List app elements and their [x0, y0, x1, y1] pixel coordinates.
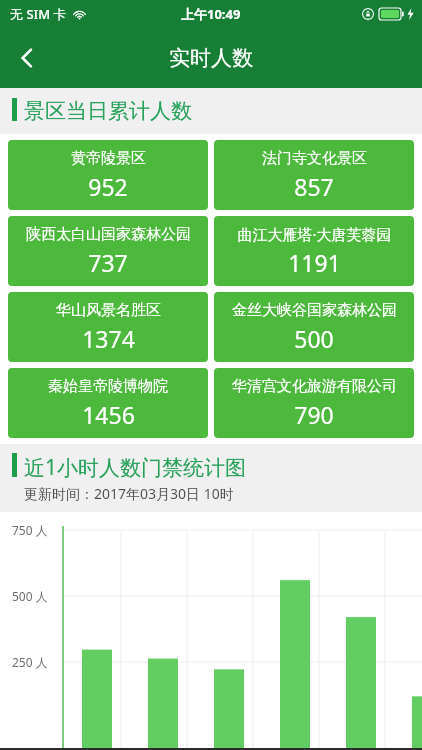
button[interactable]: 法门寺文化景区 [214, 140, 414, 210]
staticText: 华山风景名胜区 [56, 301, 161, 320]
staticText: 陕西太白山国家森林公园 [26, 225, 191, 244]
button[interactable]: 秦始皇帝陵博物院 [8, 368, 208, 438]
staticText: 更新时间：2017年03月30日 10时 [24, 484, 234, 503]
staticText: 750 人 [12, 522, 48, 538]
staticText: 法门寺文化景区 [262, 149, 367, 168]
staticText: 金丝大峡谷国家森林公园 [232, 301, 397, 320]
staticText: 景区当日累计人数 [24, 98, 192, 124]
staticText: 曲江大雁塔·大唐芙蓉园 [237, 224, 392, 244]
staticText: 250 人 [12, 654, 48, 670]
staticText: 952 [88, 171, 128, 202]
staticText: 秦始皇帝陵博物院 [48, 377, 168, 396]
staticText: 790 [294, 399, 334, 430]
button[interactable]: 曲江大雁塔·大唐芙蓉园 [214, 216, 414, 286]
staticText: 857 [294, 171, 334, 202]
staticText: 近1小时人数门禁统计图 [24, 453, 247, 482]
staticText: 737 [88, 247, 128, 278]
staticText: 上午10:49 [181, 5, 241, 23]
staticText: 1374 [82, 323, 135, 354]
staticText: 1456 [82, 399, 135, 430]
button[interactable]: 陕西太白山国家森林公园 [8, 216, 208, 286]
staticText: 无 SIM 卡 [10, 5, 67, 23]
staticText: 黄帝陵景区 [71, 149, 146, 168]
button[interactable]: 返回 [0, 28, 54, 88]
staticText: 500 [294, 323, 334, 354]
button[interactable]: 华山风景名胜区 [8, 292, 208, 362]
staticText: 1191 [288, 247, 341, 278]
staticText: 实时人数 [169, 45, 253, 71]
button[interactable]: 金丝大峡谷国家森林公园 [214, 292, 414, 362]
button[interactable]: 黄帝陵景区 [8, 140, 208, 210]
staticText: 500 人 [12, 588, 48, 604]
button[interactable]: 华清宫文化旅游有限公司 [214, 368, 414, 438]
staticText: 华清宫文化旅游有限公司 [232, 377, 397, 396]
